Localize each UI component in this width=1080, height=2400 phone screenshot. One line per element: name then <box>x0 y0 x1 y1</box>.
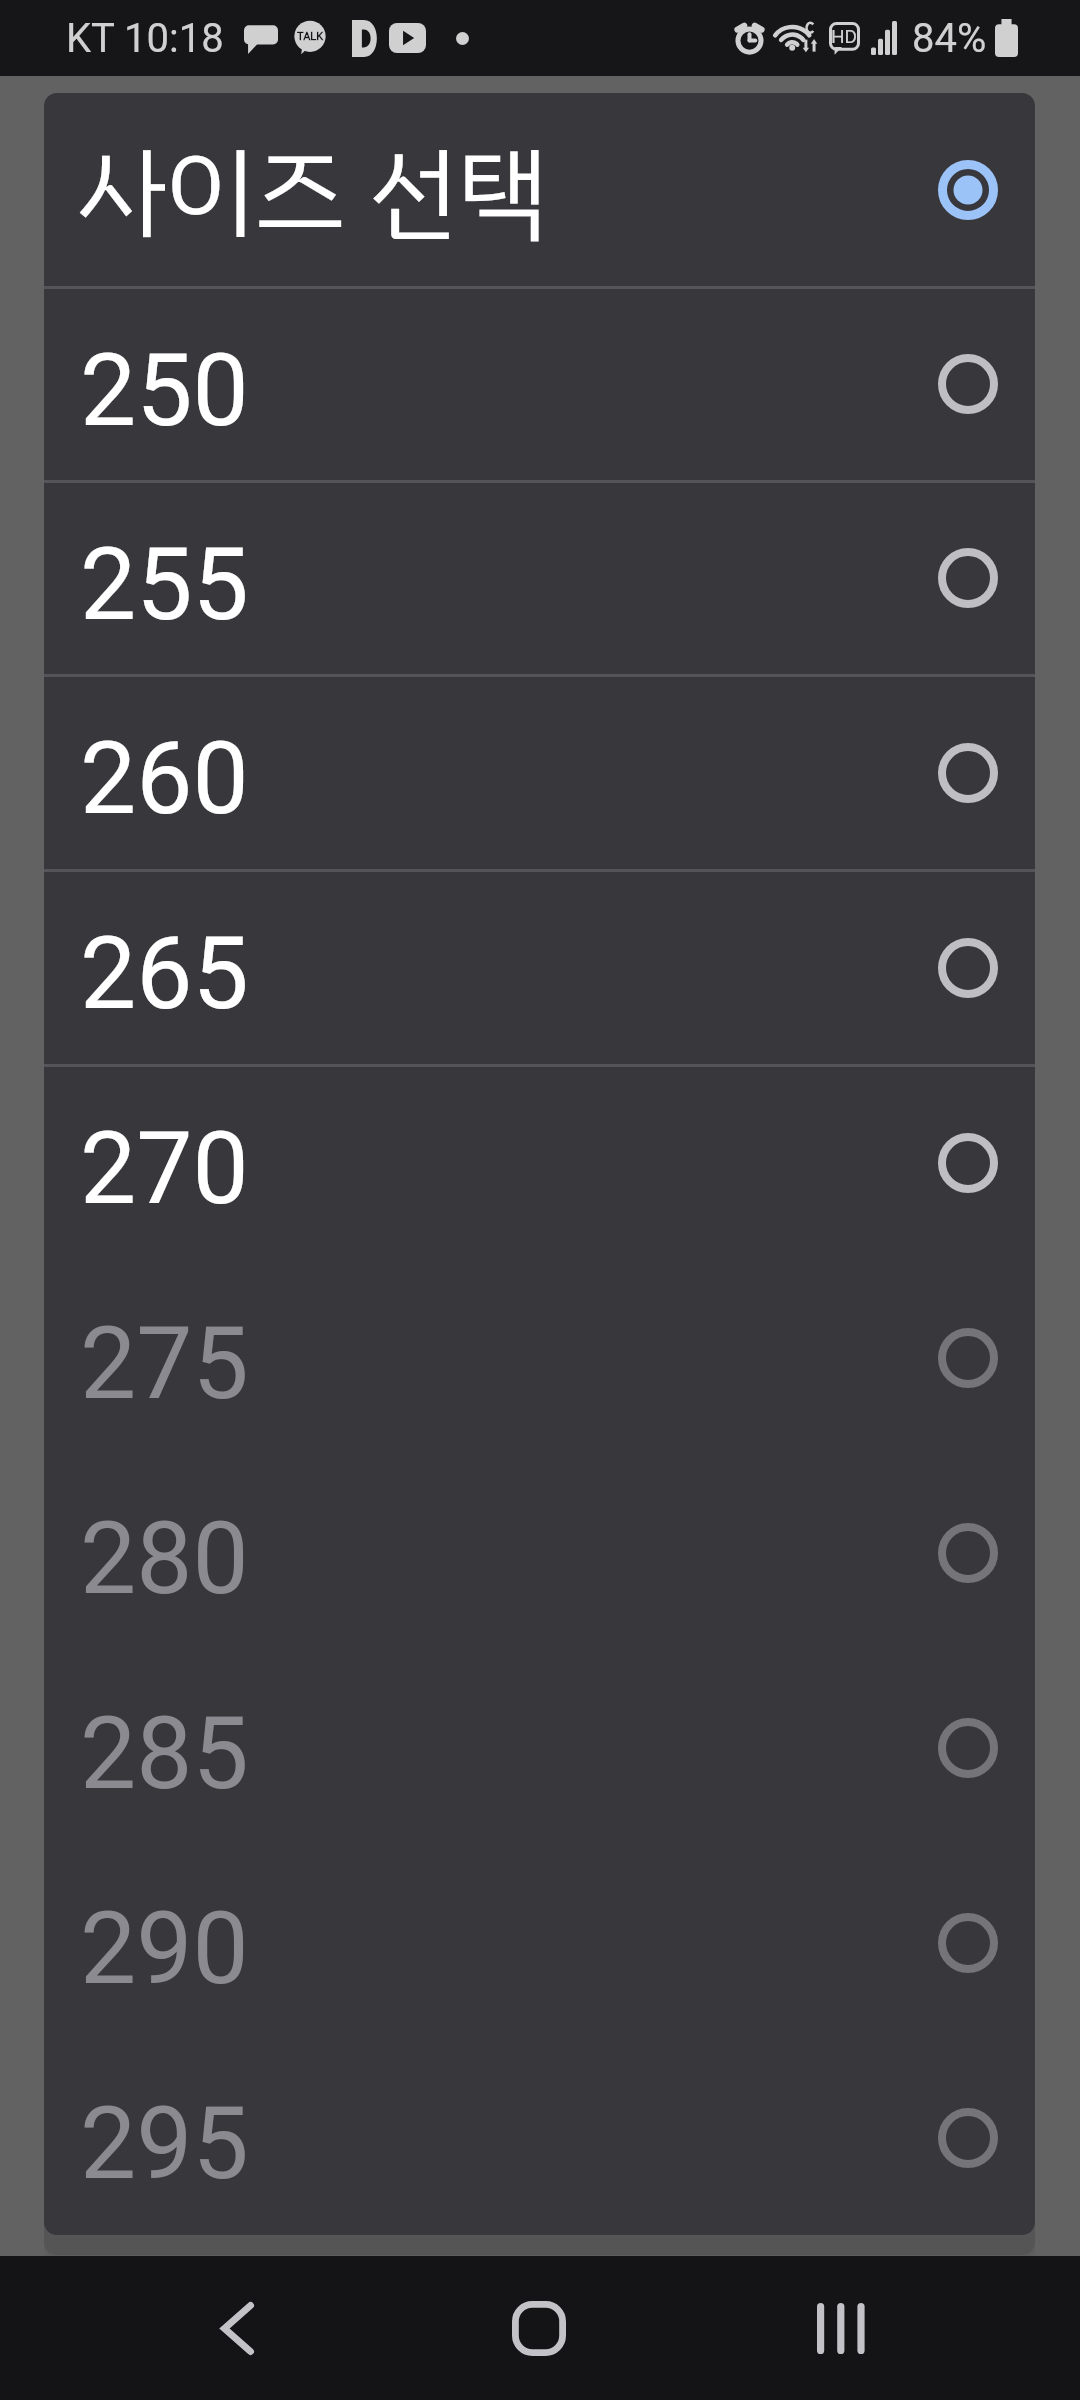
staticText: 285 <box>80 1695 249 1812</box>
staticText: 255 <box>80 526 249 643</box>
staticText: 84% <box>912 15 987 62</box>
button[interactable]: 265 <box>44 870 1035 1065</box>
staticText: 270 <box>80 1110 249 1227</box>
staticText: 280 <box>80 1500 249 1617</box>
staticText: 사이즈 선택 <box>77 118 547 268</box>
button[interactable]: 295 <box>44 2040 1035 2235</box>
staticText: KT 10:18 <box>66 15 224 62</box>
button[interactable]: Back <box>180 2268 300 2388</box>
button[interactable]: 275 <box>44 1260 1035 1455</box>
staticText: HD <box>831 25 858 47</box>
staticText: 260 <box>80 720 249 837</box>
button[interactable]: 260 <box>44 675 1035 870</box>
button[interactable]: 285 <box>44 1650 1035 1845</box>
staticText: TALK <box>297 30 324 43</box>
button[interactable]: 사이즈 선택 <box>44 93 1035 287</box>
staticText: 250 <box>80 332 249 449</box>
button[interactable]: Recent apps <box>780 2268 900 2388</box>
staticText: 290 <box>80 1890 249 2007</box>
button[interactable]: 280 <box>44 1455 1035 1650</box>
button[interactable]: 290 <box>44 1845 1035 2040</box>
staticText: 265 <box>80 915 249 1032</box>
staticText: 275 <box>80 1305 249 1422</box>
staticText: 295 <box>80 2085 249 2202</box>
button[interactable]: 270 <box>44 1065 1035 1260</box>
button[interactable]: 250 <box>44 287 1035 481</box>
button[interactable]: 255 <box>44 481 1035 675</box>
button[interactable]: Home <box>480 2268 600 2388</box>
